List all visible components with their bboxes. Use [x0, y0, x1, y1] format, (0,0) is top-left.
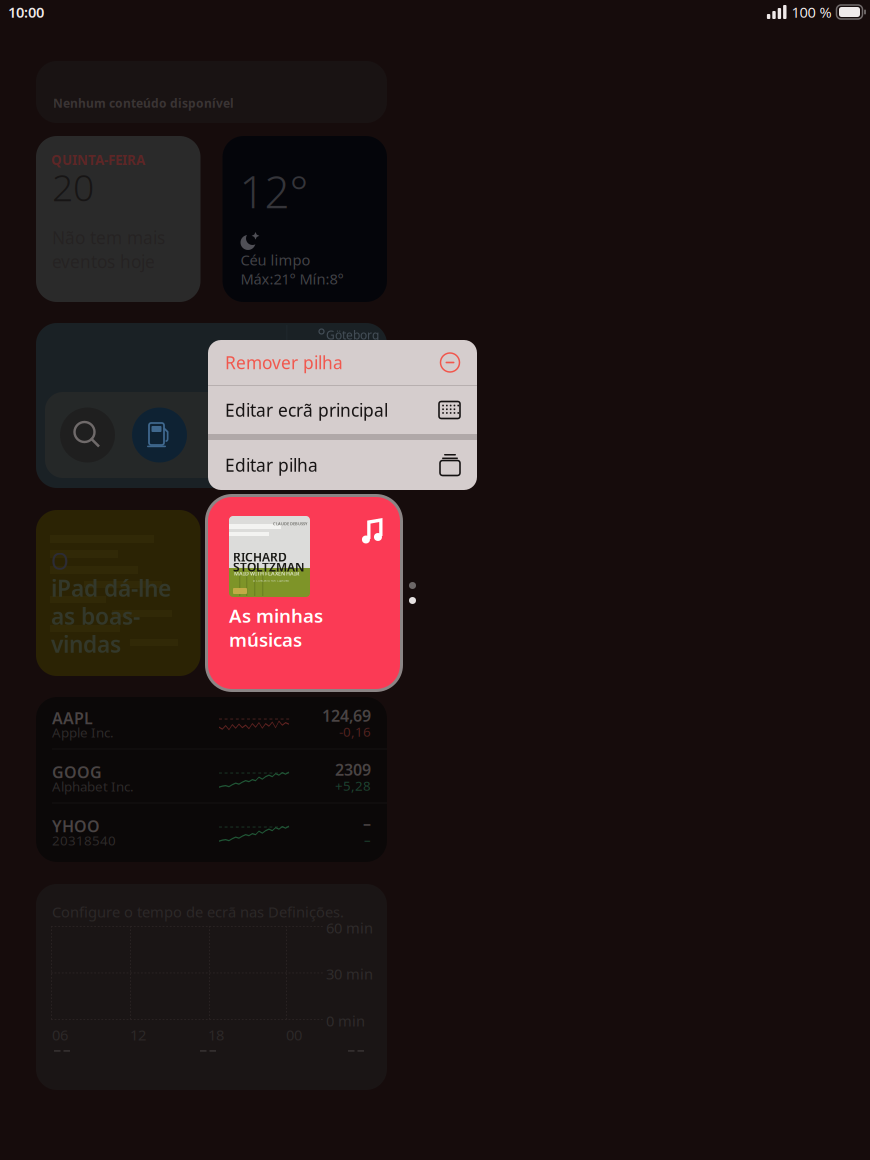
staticText: 12 [130, 1025, 146, 1044]
staticText: 18 [208, 1025, 224, 1044]
staticText: – [363, 813, 371, 834]
staticText: AAPL [52, 707, 93, 729]
staticText: 12° [239, 162, 308, 220]
staticText: 30 min [326, 964, 373, 983]
staticText: YHOO [52, 815, 100, 837]
staticText: Configure o tempo de ecrã nas Definições… [52, 902, 344, 921]
button[interactable]: YHOO [36, 803, 387, 857]
staticText: +5,28 [335, 777, 371, 794]
button[interactable]: GOOG [36, 749, 387, 803]
staticText: 06 [52, 1025, 68, 1044]
button[interactable]: QUINTA-FEIRA [36, 136, 200, 302]
staticText: as boas- [51, 601, 140, 631]
staticText: Alphabet Inc. [52, 777, 134, 795]
staticText: 124,69 [322, 705, 371, 726]
button[interactable]: Editar ecrã principal [208, 386, 477, 434]
staticText: QUINTA-FEIRA [51, 151, 145, 169]
staticText: RICHARD [233, 549, 287, 565]
staticText: STOLTZMAN [233, 559, 305, 575]
button[interactable]: AAPL [36, 695, 387, 749]
staticText: Nenhum conteúdo disponível [53, 95, 234, 111]
staticText: CLAUDE DEBUSSY [273, 521, 307, 526]
staticText: 10:00 [8, 2, 44, 22]
button[interactable]: O [36, 510, 200, 676]
staticText: Editar ecrã principal [225, 398, 388, 421]
button[interactable]: CLAUDE DEBUSSY [205, 494, 403, 692]
staticText: músicas [229, 627, 302, 652]
staticText: A CONCERTO FOR CLARINET [253, 579, 289, 582]
staticText: 20318540 [52, 831, 116, 849]
button[interactable]: Nenhum conteúdo disponível [36, 61, 387, 123]
staticText: 100 % [791, 2, 831, 22]
staticText: 0 min [326, 1011, 365, 1030]
staticText: 20 [52, 162, 94, 212]
button[interactable]: Editar pilha [208, 440, 477, 490]
staticText: Editar pilha [225, 453, 318, 476]
staticText: -0,16 [339, 723, 371, 740]
staticText: MAID WITH FLAXEN HAIR [234, 570, 299, 577]
staticText: iPad dá-lhe [51, 573, 171, 603]
button[interactable]: Göteborg [36, 323, 387, 488]
staticText: GOOG [52, 761, 102, 783]
staticText: Apple Inc. [52, 723, 114, 741]
staticText: As minhas [229, 603, 323, 628]
staticText: 60 min [326, 918, 373, 937]
staticText: Máx:21° Mín:8° [240, 269, 343, 288]
staticText: O [51, 546, 69, 576]
button[interactable]: 12° [222, 136, 387, 302]
button[interactable]: Remover pilha [208, 340, 477, 385]
staticText: Göteborg [326, 327, 379, 343]
staticText: Remover pilha [225, 351, 343, 374]
staticText: Céu limpo [240, 250, 310, 269]
staticText: vindas [51, 629, 121, 659]
staticText: 00 [286, 1025, 302, 1044]
staticText: – [364, 831, 371, 848]
staticText: 2309 [335, 759, 371, 780]
